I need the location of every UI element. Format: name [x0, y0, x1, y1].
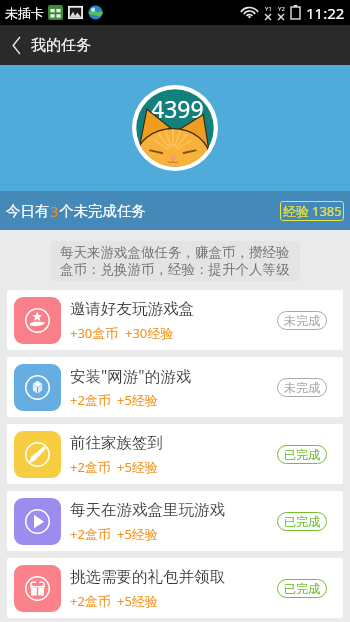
staticText: +2盒币 [70, 592, 111, 610]
button[interactable]: 未完成 [277, 311, 327, 330]
staticText: Y1 [265, 5, 272, 13]
button[interactable]: 挑选需要的礼包并领取 [7, 558, 343, 618]
staticText: 盒币：兑换游币，经验：提升个人等级 [60, 261, 290, 278]
staticText: 经验 [283, 203, 309, 219]
staticText: 未插卡 [5, 5, 44, 21]
staticText: +2盒币 [70, 391, 111, 409]
staticText: 1385 [312, 202, 342, 220]
staticText: 已完成 [284, 447, 320, 462]
staticText: 挑选需要的礼包并领取 [70, 567, 225, 587]
button[interactable]: 安装"网游"的游戏 [7, 357, 343, 417]
staticText: 邀请好友玩游戏盒 [70, 299, 194, 319]
staticText: Y2 [278, 5, 285, 13]
button[interactable]: 每天在游戏盒里玩游戏 [7, 491, 343, 551]
staticText: 安装"网游"的游戏 [70, 365, 192, 386]
staticText: 已完成 [284, 581, 320, 596]
staticText: 我的任务 [31, 36, 91, 55]
staticText: +2盒币 [70, 458, 111, 476]
staticText: 未完成 [284, 313, 320, 328]
staticText: 每天来游戏盒做任务，赚盒币，攒经验 [60, 244, 290, 261]
staticText: 每天在游戏盒里玩游戏 [70, 500, 225, 520]
button[interactable]: 邀请好友玩游戏盒 [7, 290, 343, 350]
staticText: +5经验 [117, 525, 158, 543]
staticText: 已完成 [284, 514, 320, 529]
staticText: +5经验 [117, 391, 158, 409]
staticText: +5经验 [117, 458, 158, 476]
button[interactable]: 已完成 [277, 579, 327, 598]
staticText: 今日有 [6, 202, 50, 220]
staticText: 3 [50, 201, 59, 221]
staticText: +30经验 [125, 324, 174, 342]
staticText: 未完成 [284, 380, 320, 395]
staticText: +30盒币 [70, 324, 119, 342]
button[interactable]: 前往家族签到 [7, 424, 343, 484]
staticText: 个未完成任务 [59, 202, 146, 220]
staticText: 4399 [151, 93, 204, 124]
staticText: 11:22 [306, 3, 345, 23]
button[interactable]: 已完成 [277, 512, 327, 531]
button[interactable]: 已完成 [277, 445, 327, 464]
button[interactable]: Back [0, 25, 31, 65]
button[interactable]: 经验 [280, 201, 344, 221]
button[interactable]: 未完成 [277, 378, 327, 397]
staticText: 前往家族签到 [70, 433, 163, 453]
staticText: +2盒币 [70, 525, 111, 543]
staticText: +5经验 [117, 592, 158, 610]
